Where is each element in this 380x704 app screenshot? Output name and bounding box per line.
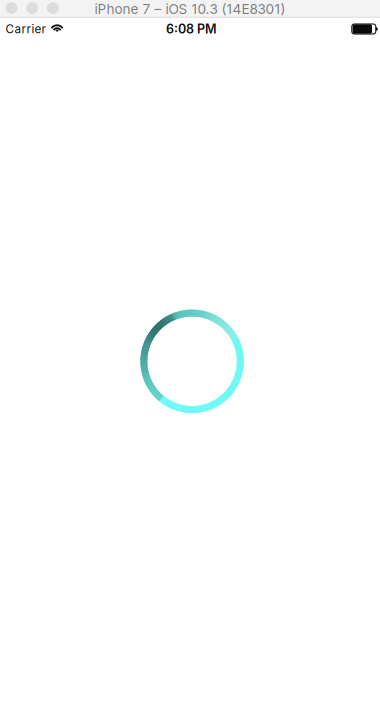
staticText: 6:08 PM	[166, 21, 217, 37]
staticText: Carrier	[5, 22, 45, 36]
staticText: iPhone 7 – iOS 10.3 (14E8301)	[94, 1, 285, 17]
button[interactable]: Minimise	[26, 2, 38, 14]
button[interactable]: Zoom	[47, 2, 59, 14]
button[interactable]: Close	[6, 2, 17, 14]
